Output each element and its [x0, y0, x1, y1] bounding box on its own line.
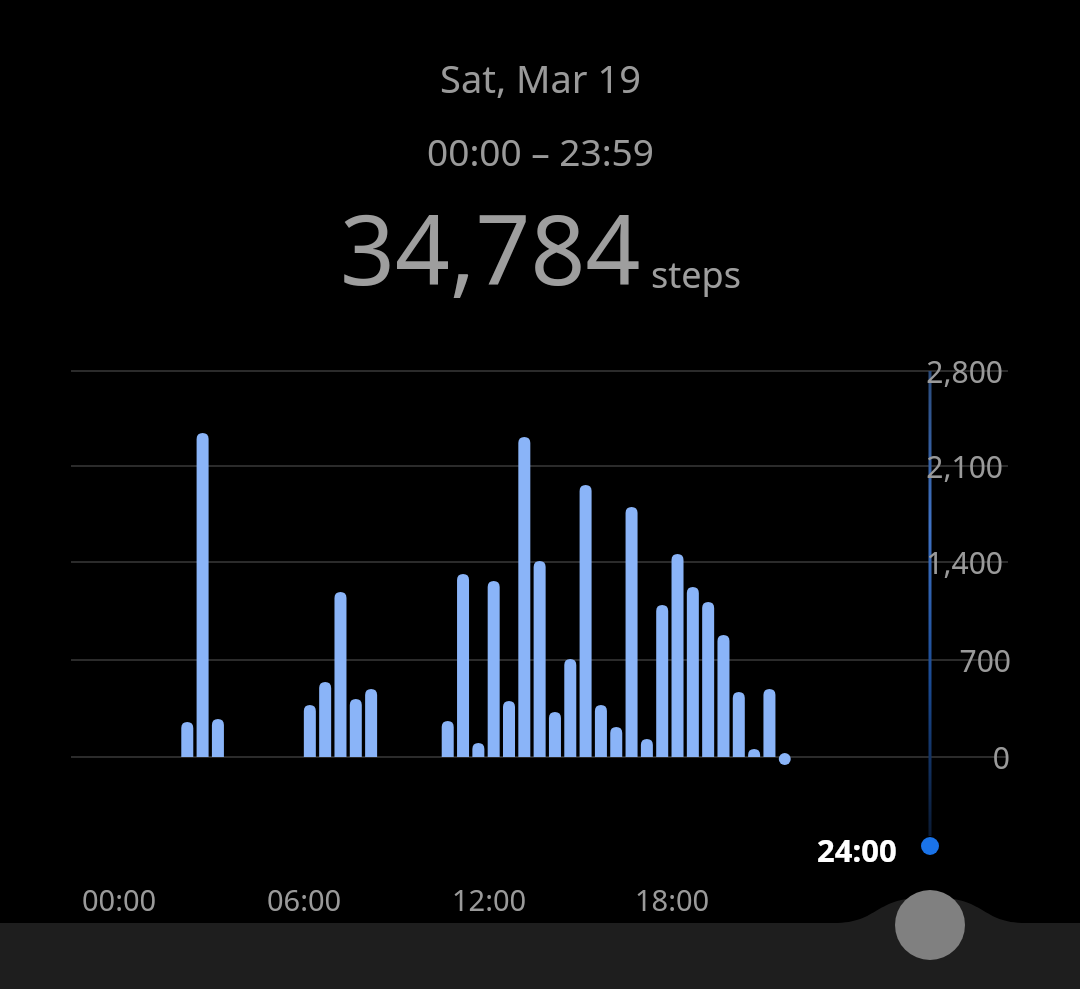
staticText: 18:00: [635, 880, 710, 919]
staticText: 06:00: [267, 880, 342, 919]
staticText: Sat, Mar 19: [440, 52, 641, 104]
staticText: steps: [651, 250, 741, 299]
staticText: 24:00: [817, 829, 897, 871]
staticText: 2,800: [926, 351, 1003, 392]
staticText: 00:00: [82, 880, 157, 919]
staticText: 0: [992, 737, 1010, 778]
staticText: 00:00 – 23:59: [427, 126, 654, 176]
staticText: 1,400: [926, 542, 1003, 583]
button[interactable]: Record activity: [895, 890, 965, 960]
staticText: 700: [959, 640, 1011, 681]
staticText: 34,784: [340, 182, 641, 313]
staticText: 12:00: [452, 880, 527, 919]
staticText: 2,100: [926, 446, 1003, 487]
